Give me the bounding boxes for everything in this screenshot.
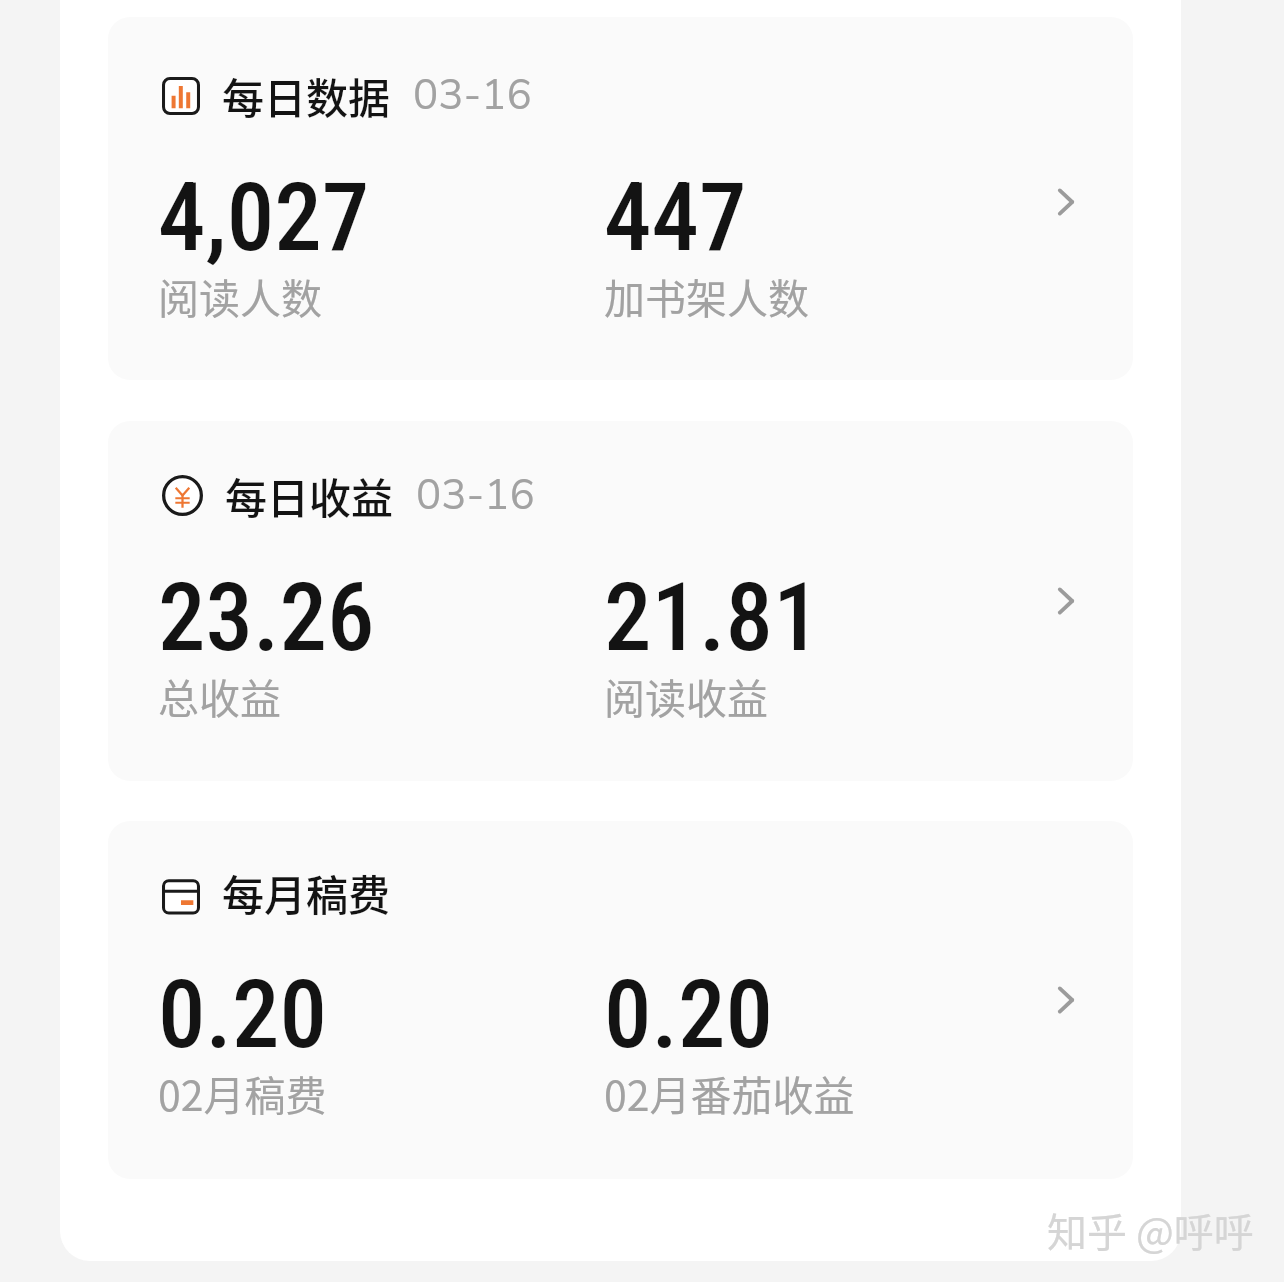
staticText: 23.26 (158, 562, 375, 673)
staticText: 加书架人数 (604, 266, 809, 325)
button[interactable]: 查看详情 (1021, 157, 1111, 247)
staticText: 阅读人数 (158, 266, 322, 325)
staticText: 0.20 (158, 959, 327, 1070)
staticText: 每日收益 (225, 465, 394, 526)
button[interactable]: 每日收益 (108, 421, 1133, 781)
staticText: 02月稿费 (158, 1063, 327, 1122)
staticText: 447 (604, 162, 747, 273)
staticText: 03-16 (413, 67, 532, 124)
staticText: 4,027 (158, 162, 370, 273)
staticText: 21.81 (604, 562, 821, 673)
staticText: 总收益 (158, 666, 281, 725)
staticText: 每日数据 (222, 65, 391, 126)
button[interactable]: 每日数据 (108, 17, 1133, 380)
staticText: 知乎 @呼呼 (1047, 1201, 1254, 1259)
button[interactable]: 查看详情 (1021, 955, 1111, 1045)
staticText: 阅读收益 (604, 666, 768, 725)
staticText: 02月番茄收益 (604, 1063, 855, 1122)
staticText: 03-16 (416, 467, 535, 524)
staticText: 0.20 (604, 959, 773, 1070)
button[interactable]: 查看详情 (1021, 556, 1111, 646)
button[interactable]: 每月稿费 (108, 821, 1133, 1179)
staticText: 每月稿费 (222, 862, 391, 923)
